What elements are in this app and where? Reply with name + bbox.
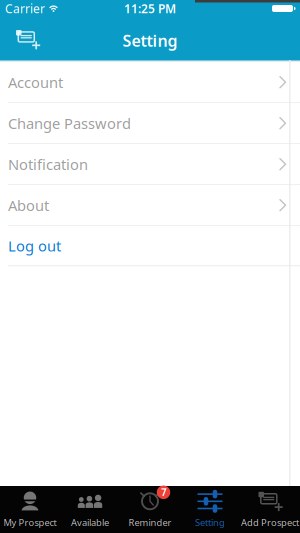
staticText: Notification [8, 154, 88, 174]
staticText: Setting [122, 30, 177, 51]
button[interactable]: Available [60, 486, 120, 533]
button[interactable]: Change Password [0, 103, 300, 144]
button[interactable]: Notification [0, 144, 300, 185]
button[interactable]: Add Prospect [240, 486, 300, 533]
staticText: Available [71, 516, 109, 529]
staticText: Reminder [128, 516, 171, 529]
button[interactable]: About [0, 185, 300, 226]
button[interactable]: Account [0, 62, 300, 103]
staticText: Add Prospect [241, 516, 299, 529]
staticText: Carrier [5, 0, 45, 16]
staticText: Account [8, 72, 63, 92]
button[interactable]: My Prospect [0, 486, 60, 533]
staticText: Change Password [8, 113, 131, 133]
button[interactable]: Log out [0, 226, 300, 266]
staticText: My Prospect [3, 516, 56, 529]
staticText: Setting [195, 516, 225, 529]
button[interactable]: Add Prospect [0, 28, 40, 48]
button[interactable]: Reminder [120, 486, 180, 533]
staticText: 11:25 PM [124, 0, 176, 16]
staticText: About [8, 195, 49, 215]
button[interactable]: Setting [180, 486, 240, 533]
staticText: Log out [8, 236, 61, 255]
